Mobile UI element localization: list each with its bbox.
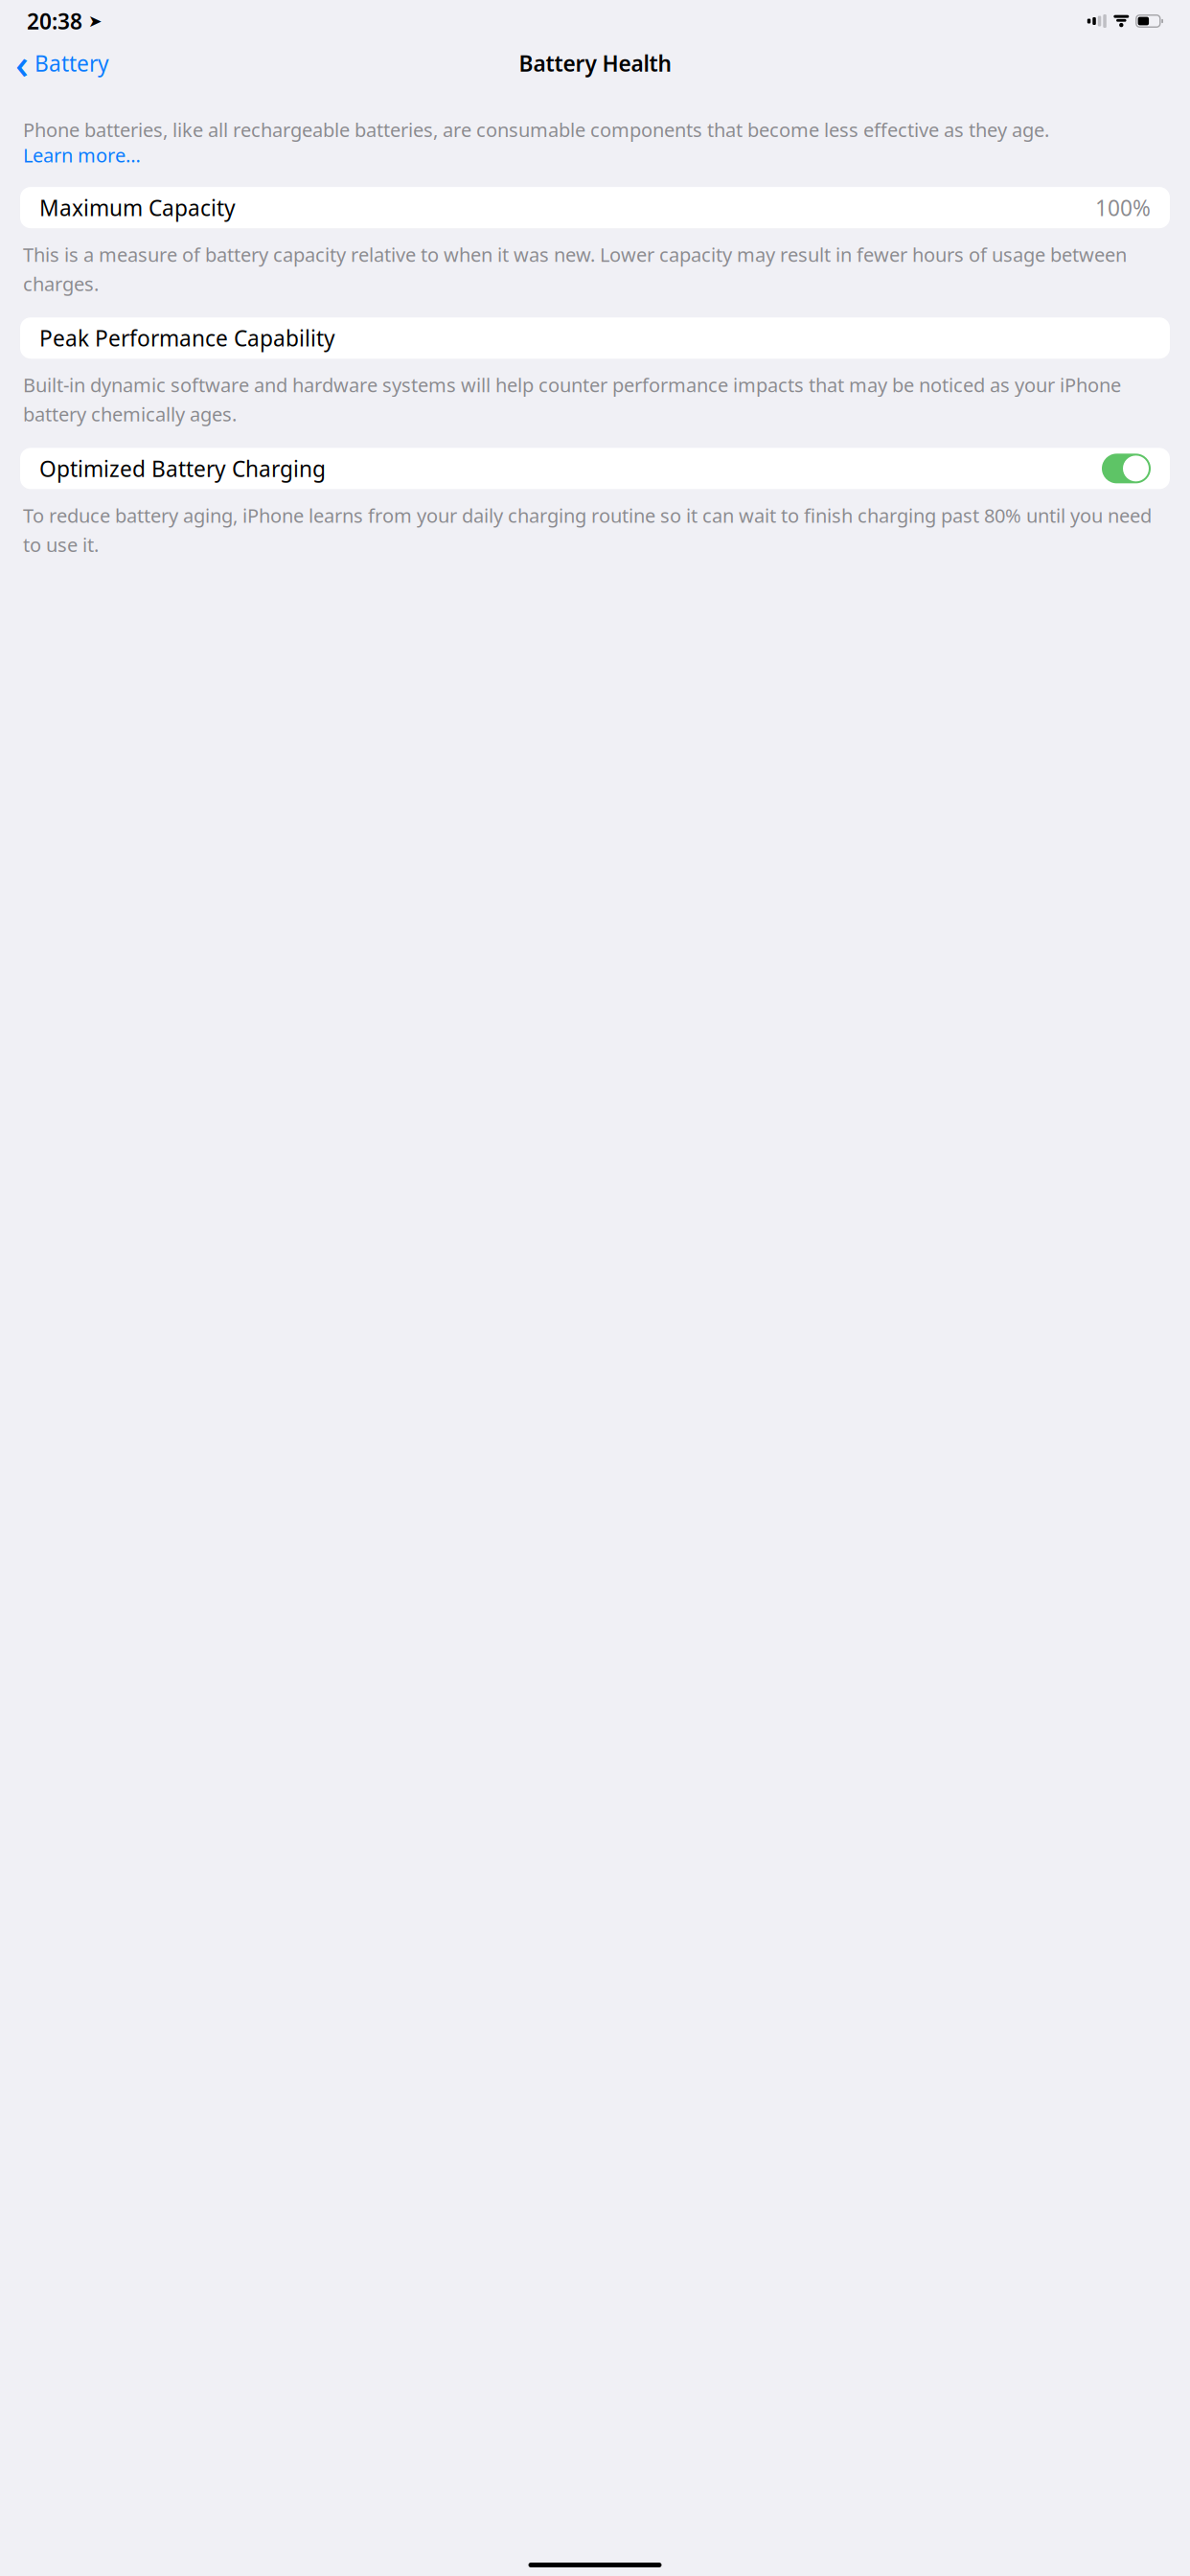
staticText: This is a measure of battery capacity re…: [23, 242, 1127, 296]
staticText: 100%: [1095, 193, 1151, 222]
button[interactable]: Optimized Battery Charging: [0, 448, 1190, 489]
button[interactable]: Maximum Capacity: [0, 187, 1190, 228]
staticText: 20:38: [27, 7, 82, 35]
staticText: Peak Performance Capability: [39, 324, 335, 352]
staticText: Battery: [34, 49, 109, 78]
staticText: ‹: [15, 36, 29, 90]
staticText: Phone batteries, like all rechargeable b…: [23, 117, 1054, 142]
staticText: ➤: [88, 12, 103, 31]
button[interactable]: Peak Performance Capability: [0, 317, 1190, 359]
staticText: Maximum Capacity: [39, 193, 236, 222]
staticText: To reduce battery aging, iPhone learns f…: [23, 503, 1152, 557]
staticText: Optimized Battery Charging: [39, 454, 326, 483]
button[interactable]: Learn more…: [23, 142, 141, 168]
staticText: Battery Health: [519, 49, 671, 78]
button[interactable]: ‹: [8, 32, 109, 94]
staticText: Learn more…: [23, 142, 141, 168]
staticText: Built-in dynamic software and hardware s…: [23, 372, 1121, 427]
